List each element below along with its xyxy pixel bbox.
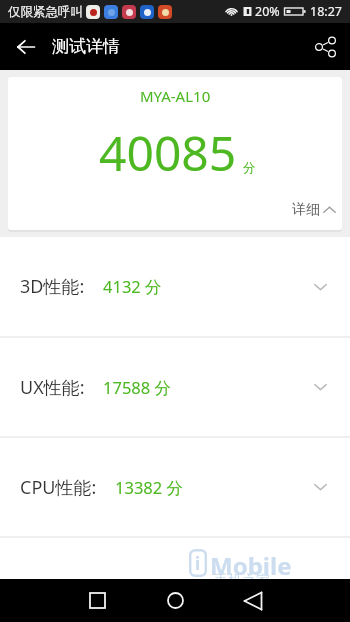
staticText: MYA-AL10 — [140, 86, 211, 106]
staticText: 4132 分 — [103, 275, 162, 298]
staticText: 40085 — [99, 120, 237, 185]
button[interactable]: Recents — [58, 579, 136, 622]
button[interactable]: 3D性能: — [0, 237, 350, 336]
button[interactable]: Back — [0, 23, 52, 70]
button[interactable]: Back — [214, 579, 292, 622]
staticText: 分 — [243, 160, 256, 176]
staticText: 测试详情 — [52, 36, 120, 57]
staticText: UX性能: — [20, 375, 85, 400]
button[interactable]: MYA-AL10 — [8, 77, 342, 230]
staticText: i — [195, 552, 201, 575]
staticText: 18:27 — [310, 3, 342, 20]
button[interactable]: CPU性能: — [0, 438, 350, 536]
staticText: 详细 — [292, 201, 320, 219]
staticText: 仅限紧急呼叫 — [8, 4, 83, 20]
button[interactable]: Home — [136, 579, 214, 622]
staticText: CPU性能: — [20, 475, 97, 500]
button[interactable]: Share — [302, 23, 350, 70]
staticText: Mobile — [210, 549, 292, 582]
staticText: 3D性能: — [20, 274, 85, 299]
staticText: 17588 分 — [103, 376, 171, 399]
staticText: 20% — [255, 3, 280, 20]
button[interactable]: UX性能: — [0, 338, 350, 436]
staticText: 手机之家 — [214, 572, 270, 590]
staticText: 13382 分 — [115, 476, 183, 499]
